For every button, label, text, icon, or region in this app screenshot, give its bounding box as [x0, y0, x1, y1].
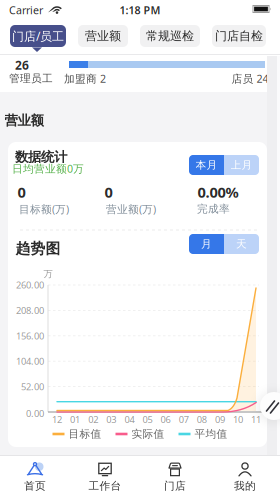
- staticText: 常规巡检: [146, 29, 194, 43]
- staticText: 日均营业额0万: [12, 161, 84, 176]
- staticText: 加盟商 2: [64, 71, 106, 86]
- button[interactable]: 月: [189, 234, 224, 254]
- staticText: 营业额: [85, 29, 121, 43]
- button[interactable]: 我的: [210, 455, 280, 499]
- staticText: 万: [43, 268, 52, 280]
- staticText: 07: [179, 413, 189, 426]
- staticText: 156.00: [16, 330, 44, 342]
- staticText: 05: [142, 413, 152, 426]
- button[interactable]: 门店自检: [212, 25, 266, 47]
- staticText: 我的: [234, 479, 256, 492]
- staticText: 实际值: [131, 427, 164, 440]
- staticText: 09: [215, 413, 225, 426]
- button[interactable]: 快捷菜单: [260, 392, 280, 420]
- button[interactable]: 门店/员工: [10, 25, 66, 47]
- staticText: 52.00: [21, 380, 44, 393]
- staticText: 数据统计: [15, 149, 67, 165]
- staticText: 完成率: [197, 202, 230, 215]
- staticText: 门店: [164, 479, 186, 492]
- staticText: 营业额(万): [106, 202, 156, 216]
- staticText: 01: [70, 413, 80, 426]
- staticText: 首页: [24, 479, 46, 492]
- staticText: 趋势图: [15, 239, 60, 257]
- staticText: Carrier: [9, 3, 43, 17]
- staticText: 06: [161, 413, 171, 426]
- staticText: 08: [197, 413, 207, 426]
- button[interactable]: 门店: [140, 455, 210, 499]
- staticText: 02: [88, 413, 98, 426]
- button[interactable]: 本月: [189, 155, 224, 175]
- staticText: 03: [106, 413, 116, 426]
- staticText: 上月: [230, 158, 252, 171]
- staticText: 0: [104, 182, 112, 202]
- staticText: 目标值: [68, 427, 101, 440]
- staticText: 10: [233, 413, 243, 426]
- staticText: 208.00: [16, 304, 44, 317]
- staticText: 门店/员工: [12, 28, 64, 44]
- staticText: 管理员工: [9, 72, 53, 85]
- staticText: 04: [124, 413, 134, 426]
- staticText: 0: [17, 182, 25, 202]
- staticText: 104.00: [16, 355, 44, 367]
- button[interactable]: 营业额: [78, 25, 128, 47]
- button[interactable]: 工作台: [70, 455, 140, 499]
- staticText: 月: [201, 237, 212, 250]
- button[interactable]: 首页: [0, 455, 70, 499]
- button[interactable]: 常规巡检: [140, 25, 200, 47]
- staticText: 12: [52, 413, 62, 426]
- staticText: 门店自检: [215, 29, 263, 43]
- staticText: 本月: [195, 158, 217, 171]
- staticText: 260.00: [16, 279, 44, 291]
- staticText: 工作台: [88, 479, 121, 492]
- staticText: 1:18 PM: [119, 3, 160, 17]
- staticText: 0.00: [26, 407, 44, 420]
- button[interactable]: 上月: [224, 155, 259, 175]
- staticText: 营业额: [4, 112, 43, 129]
- button[interactable]: 天: [224, 234, 259, 254]
- staticText: 26: [15, 57, 29, 73]
- staticText: 平均值: [194, 427, 227, 440]
- staticText: 天: [236, 237, 247, 250]
- staticText: 目标额(万): [19, 202, 69, 216]
- staticText: 11: [251, 413, 261, 426]
- staticText: 0.00%: [197, 182, 238, 202]
- staticText: 店员 24: [231, 71, 268, 86]
